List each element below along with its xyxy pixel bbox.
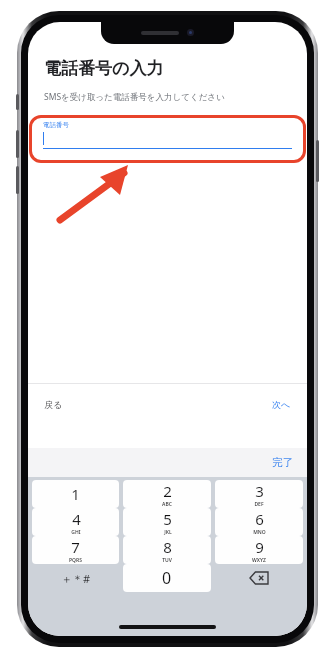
button[interactable]: 6 xyxy=(215,508,303,536)
staticText: 6 xyxy=(255,509,264,529)
staticText: GHI xyxy=(71,529,81,536)
button[interactable]: 4 xyxy=(32,508,119,536)
staticText: JKL xyxy=(164,529,172,536)
staticText: 4 xyxy=(72,509,81,529)
button[interactable]: 7 xyxy=(32,536,119,564)
button[interactable]: 戻る xyxy=(44,399,63,410)
staticText: 7 xyxy=(71,537,80,557)
staticText: MNO xyxy=(253,529,266,536)
staticText: 0 xyxy=(162,567,172,589)
staticText: ＋＊# xyxy=(61,571,91,586)
staticText: ABC xyxy=(162,501,172,508)
staticText: 次へ xyxy=(272,399,291,410)
staticText: PQRS xyxy=(69,557,82,564)
staticText: SMSを受け取った電話番号を入力してください xyxy=(44,91,225,103)
button[interactable]: 0 xyxy=(123,564,211,592)
button[interactable]: 完了 xyxy=(272,456,293,469)
button[interactable]: 2 xyxy=(123,480,211,508)
button[interactable]: ＋＊# xyxy=(32,564,119,592)
staticText: WXYZ xyxy=(252,557,266,564)
staticText: 完了 xyxy=(272,456,293,469)
staticText: 電話番号の入力 xyxy=(44,58,164,79)
button[interactable]: 次へ xyxy=(272,399,291,410)
staticText: 9 xyxy=(255,537,264,557)
staticText: 5 xyxy=(163,509,172,529)
button[interactable]: Delete xyxy=(215,564,303,592)
staticText: 2 xyxy=(163,481,172,501)
button[interactable]: 電話番号 xyxy=(29,115,306,163)
button[interactable]: 8 xyxy=(123,536,211,564)
button[interactable]: 1 xyxy=(32,480,119,508)
staticText: 1 xyxy=(71,484,80,504)
button[interactable]: 5 xyxy=(123,508,211,536)
staticText: TUV xyxy=(162,557,172,564)
staticText: 戻る xyxy=(44,399,63,410)
staticText: 電話番号 xyxy=(43,121,69,129)
staticText: 8 xyxy=(163,537,172,557)
staticText: 3 xyxy=(255,481,264,501)
button[interactable]: 9 xyxy=(215,536,303,564)
button[interactable]: 3 xyxy=(215,480,303,508)
staticText: DEF xyxy=(254,501,264,508)
